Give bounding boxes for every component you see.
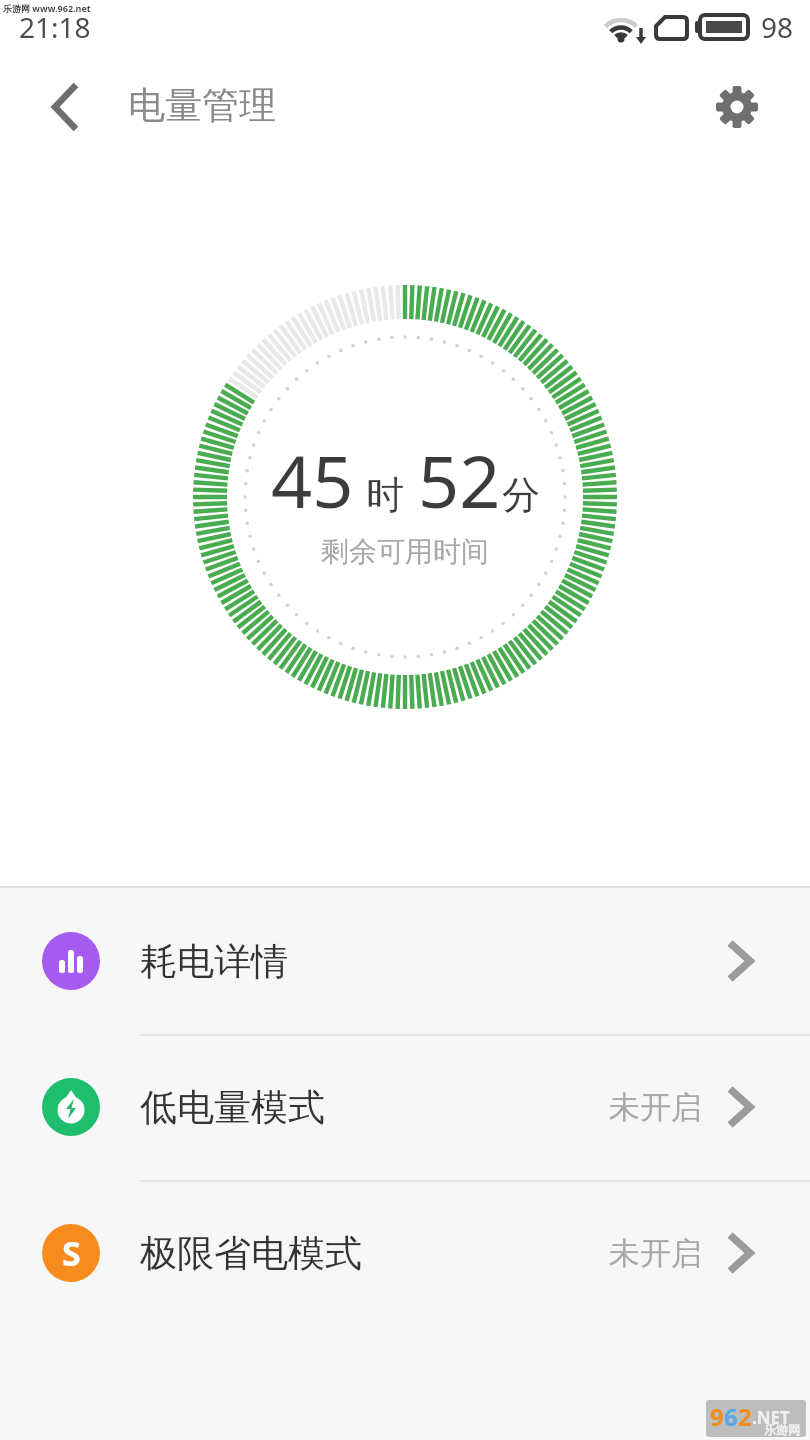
staticText: 45 (271, 431, 354, 529)
staticText: 21:18 (19, 8, 91, 46)
staticText: 2 (738, 1400, 752, 1433)
staticText: 电量管理 (128, 82, 276, 129)
staticText: 98 (761, 8, 794, 46)
staticText: 乐游网 (764, 1422, 800, 1437)
button[interactable]: 低电量模式 (0, 1034, 810, 1180)
staticText: .NET (752, 1406, 790, 1429)
staticText: 分 (502, 471, 540, 519)
button[interactable] (32, 75, 96, 139)
button[interactable]: S (0, 1180, 810, 1326)
staticText: 时 (366, 471, 404, 519)
staticText: 未开启 (609, 1234, 702, 1273)
staticText: 未开启 (609, 1088, 702, 1127)
staticText: 6 (724, 1400, 738, 1433)
staticText: 9 (710, 1400, 724, 1433)
staticText: 剩余可用时间 (321, 534, 489, 569)
staticText: 乐游网 www.962.net (3, 2, 91, 14)
staticText: 耗电详情 (140, 938, 288, 985)
staticText: 52 (418, 431, 501, 529)
staticText: S (62, 1230, 81, 1276)
button[interactable] (705, 75, 769, 139)
staticText: 极限省电模式 (140, 1230, 362, 1277)
staticText: 低电量模式 (140, 1084, 325, 1131)
button[interactable]: 耗电详情 (0, 888, 810, 1034)
